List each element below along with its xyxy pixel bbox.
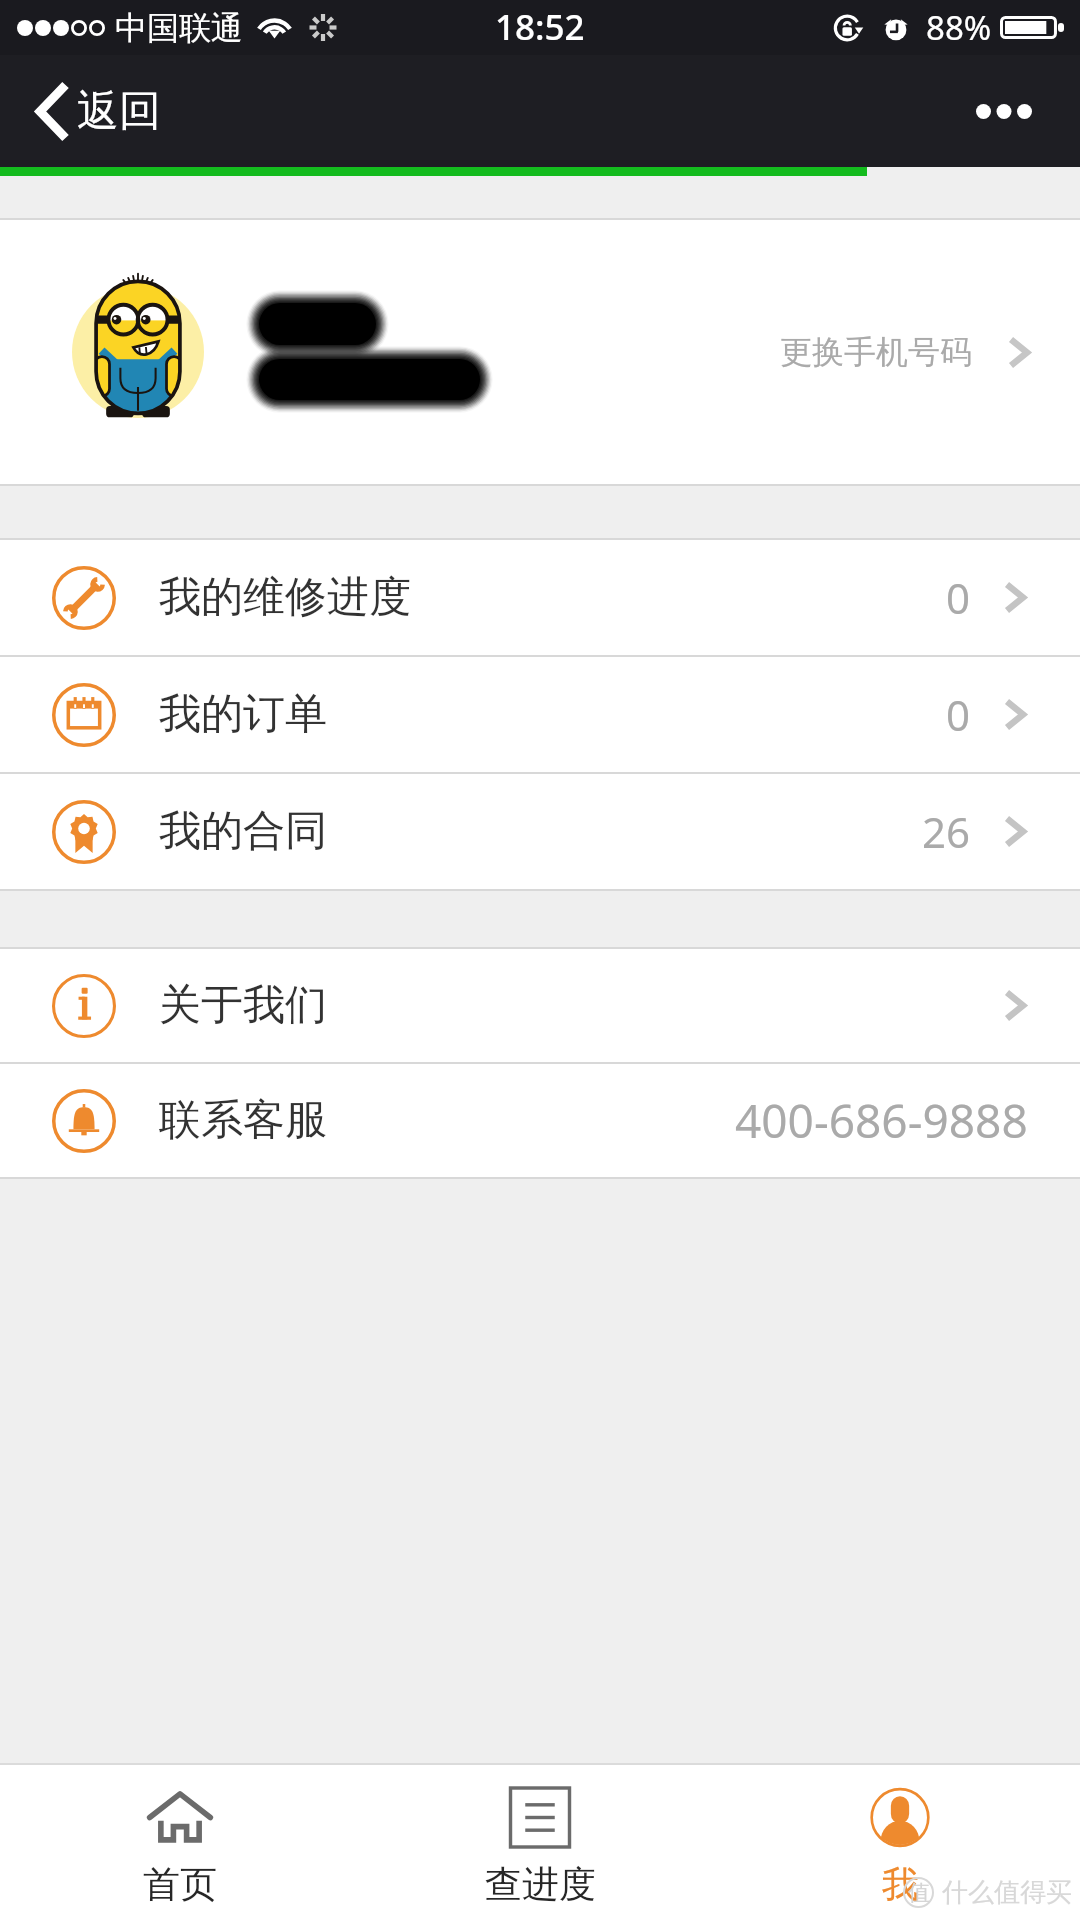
button[interactable]: 我 [720,1765,1080,1920]
staticText: 关于我们 [159,979,327,1032]
button[interactable]: 返回 Back [0,55,187,167]
button[interactable]: More options [940,55,1080,167]
button[interactable]: 首页 [0,1765,360,1920]
staticText: 值 [908,1879,930,1907]
button[interactable]: 我的合同 [0,774,1080,889]
staticText: 0 [946,686,971,743]
button[interactable]: 更换手机号码 [0,220,1080,484]
button[interactable]: 我的订单 [0,657,1080,772]
staticText: 我的订单 [159,688,327,741]
button[interactable]: 联系客服 [0,1064,1080,1177]
staticText: 0 [946,569,971,626]
staticText: 查进度 [485,1861,596,1908]
staticText: 首页 [143,1861,217,1908]
button[interactable]: 关于我们 [0,949,1080,1062]
staticText: 88% [926,5,992,50]
staticText: 我的维修进度 [159,571,411,624]
button[interactable]: 查进度 [360,1765,720,1920]
staticText: 400-686-9888 [735,1089,1028,1152]
staticText: 26 [922,803,971,860]
staticText: 联系客服 [159,1094,327,1147]
staticText: 返回 [77,85,161,138]
staticText: 什么值得买 [942,1876,1072,1909]
staticText: 中国联通 [115,8,243,48]
staticText: 我 [882,1861,919,1908]
staticText: 更换手机号码 [780,332,972,372]
button[interactable]: 我的维修进度 [0,540,1080,655]
staticText: 18:52 [495,3,585,51]
staticText: 我的合同 [159,805,327,858]
